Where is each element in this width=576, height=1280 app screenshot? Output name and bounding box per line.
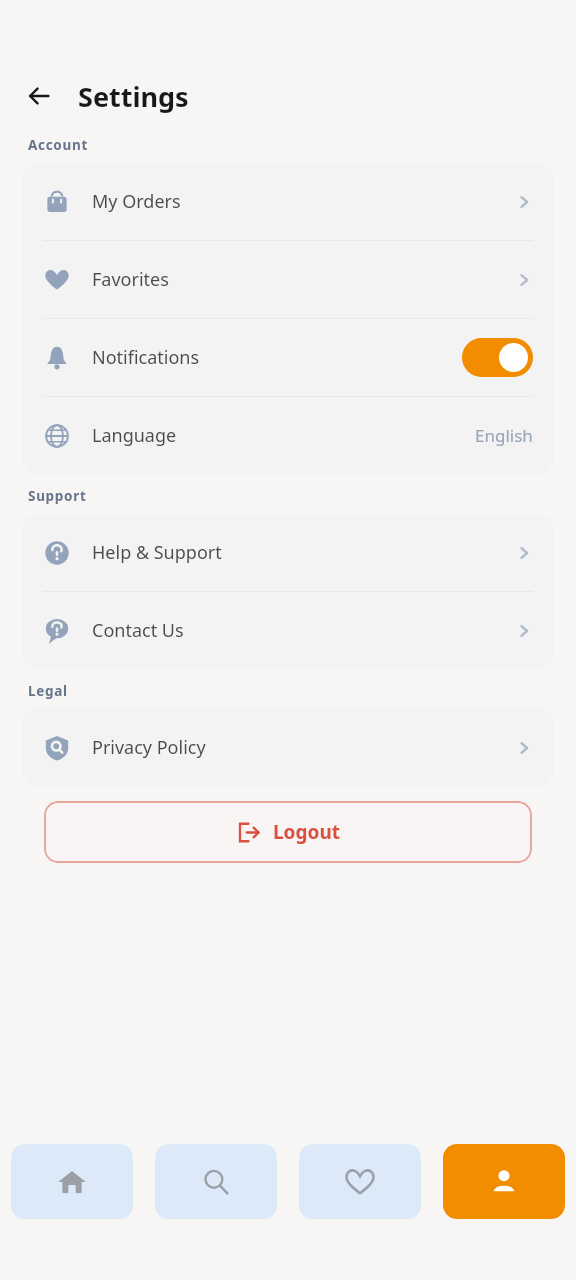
staticText: Help & Support — [92, 540, 222, 565]
button[interactable]: Language — [22, 397, 554, 474]
button[interactable]: Profile — [443, 1144, 565, 1219]
staticText: Legal — [28, 682, 68, 700]
button[interactable]: Favorites — [299, 1144, 421, 1219]
button[interactable]: Logout — [44, 801, 532, 863]
staticText: Notifications — [92, 345, 200, 370]
staticText: Settings — [78, 78, 189, 115]
button[interactable]: Contact Us — [22, 592, 554, 669]
button[interactable]: Search — [155, 1144, 277, 1219]
button[interactable]: Favorites — [22, 241, 554, 318]
button[interactable]: Back — [21, 78, 57, 114]
button[interactable]: Notifications — [22, 319, 554, 396]
button[interactable]: My Orders — [22, 163, 554, 240]
staticText: Favorites — [92, 267, 169, 292]
staticText: Support — [28, 487, 87, 505]
staticText: Privacy Policy — [92, 735, 206, 760]
staticText: Language — [92, 423, 177, 448]
staticText: Contact Us — [92, 618, 184, 643]
staticText: Account — [28, 136, 89, 154]
staticText: English — [475, 424, 533, 447]
button[interactable]: Help & Support — [22, 514, 554, 591]
staticText: My Orders — [92, 189, 181, 214]
staticText: Logout — [273, 819, 340, 845]
button[interactable]: Privacy Policy — [22, 709, 554, 786]
button[interactable]: Home — [11, 1144, 133, 1219]
button[interactable]: Notifications toggle — [462, 338, 533, 377]
